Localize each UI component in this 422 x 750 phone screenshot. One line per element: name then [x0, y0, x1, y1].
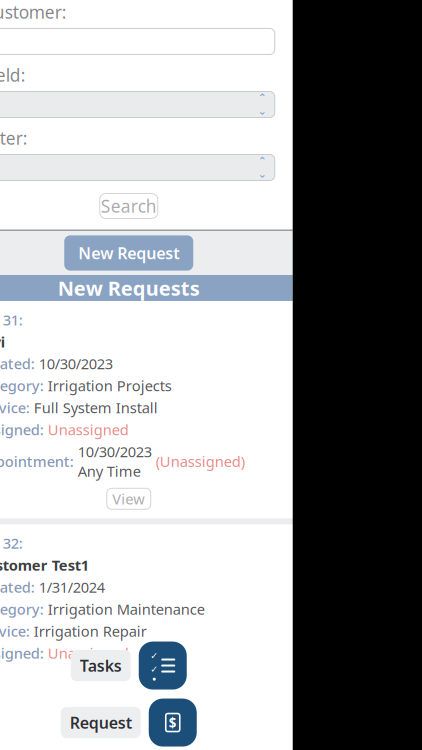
- staticText: ✓: [150, 664, 158, 675]
- staticText: Tasks: [80, 655, 122, 676]
- staticText: Unassigned: [48, 643, 129, 663]
- staticText: 10/30/2023 Any Time: [78, 442, 152, 481]
- staticText: Service:: [0, 398, 30, 417]
- staticText: Search: [101, 194, 157, 217]
- staticText: Customer Test1: [0, 555, 89, 575]
- staticText: Created:: [0, 354, 35, 373]
- staticText: ⌃: [258, 92, 267, 104]
- staticText: Field:: [0, 63, 26, 86]
- staticText: ✓: [150, 650, 158, 661]
- staticText: ⌄: [258, 105, 267, 117]
- staticText: Appointment:: [0, 452, 74, 471]
- staticText: 10/30/2023: [39, 354, 113, 373]
- staticText: Customer:: [0, 0, 67, 23]
- staticText: Assigned:: [0, 420, 44, 439]
- staticText: Category:: [0, 599, 44, 619]
- staticText: Irrigation Projects: [48, 376, 172, 395]
- staticText: Job 32:: [0, 533, 23, 553]
- staticText: View: [112, 489, 145, 509]
- staticText: New Request: [78, 242, 179, 264]
- staticText: ⌃: [258, 155, 267, 167]
- staticText: Assigned:: [0, 643, 44, 663]
- staticText: Full System Install: [34, 398, 158, 417]
- button[interactable]: Request: [149, 699, 197, 747]
- staticText: Filter:: [0, 126, 28, 149]
- staticText: Job 31:: [0, 310, 23, 329]
- staticText: (Unassigned): [156, 452, 245, 471]
- staticText: Unassigned: [48, 420, 129, 439]
- button[interactable]: View: [107, 488, 151, 509]
- staticText: ⌄: [258, 168, 267, 180]
- staticText: Request: [70, 712, 132, 733]
- staticText: New Requests: [58, 275, 200, 301]
- button[interactable]: Search: [100, 193, 158, 218]
- staticText: Irrigation Repair: [34, 621, 147, 641]
- staticText: 1/31/2024: [39, 577, 105, 597]
- staticText: Created:: [0, 577, 35, 597]
- button[interactable]: Tasks: [139, 642, 187, 690]
- button[interactable]: New Request: [64, 235, 193, 271]
- staticText: $: [169, 714, 177, 731]
- staticText: Levi: [0, 332, 5, 351]
- staticText: Irrigation Maintenance: [48, 599, 205, 619]
- staticText: Category:: [0, 376, 44, 395]
- staticText: Service:: [0, 621, 30, 641]
